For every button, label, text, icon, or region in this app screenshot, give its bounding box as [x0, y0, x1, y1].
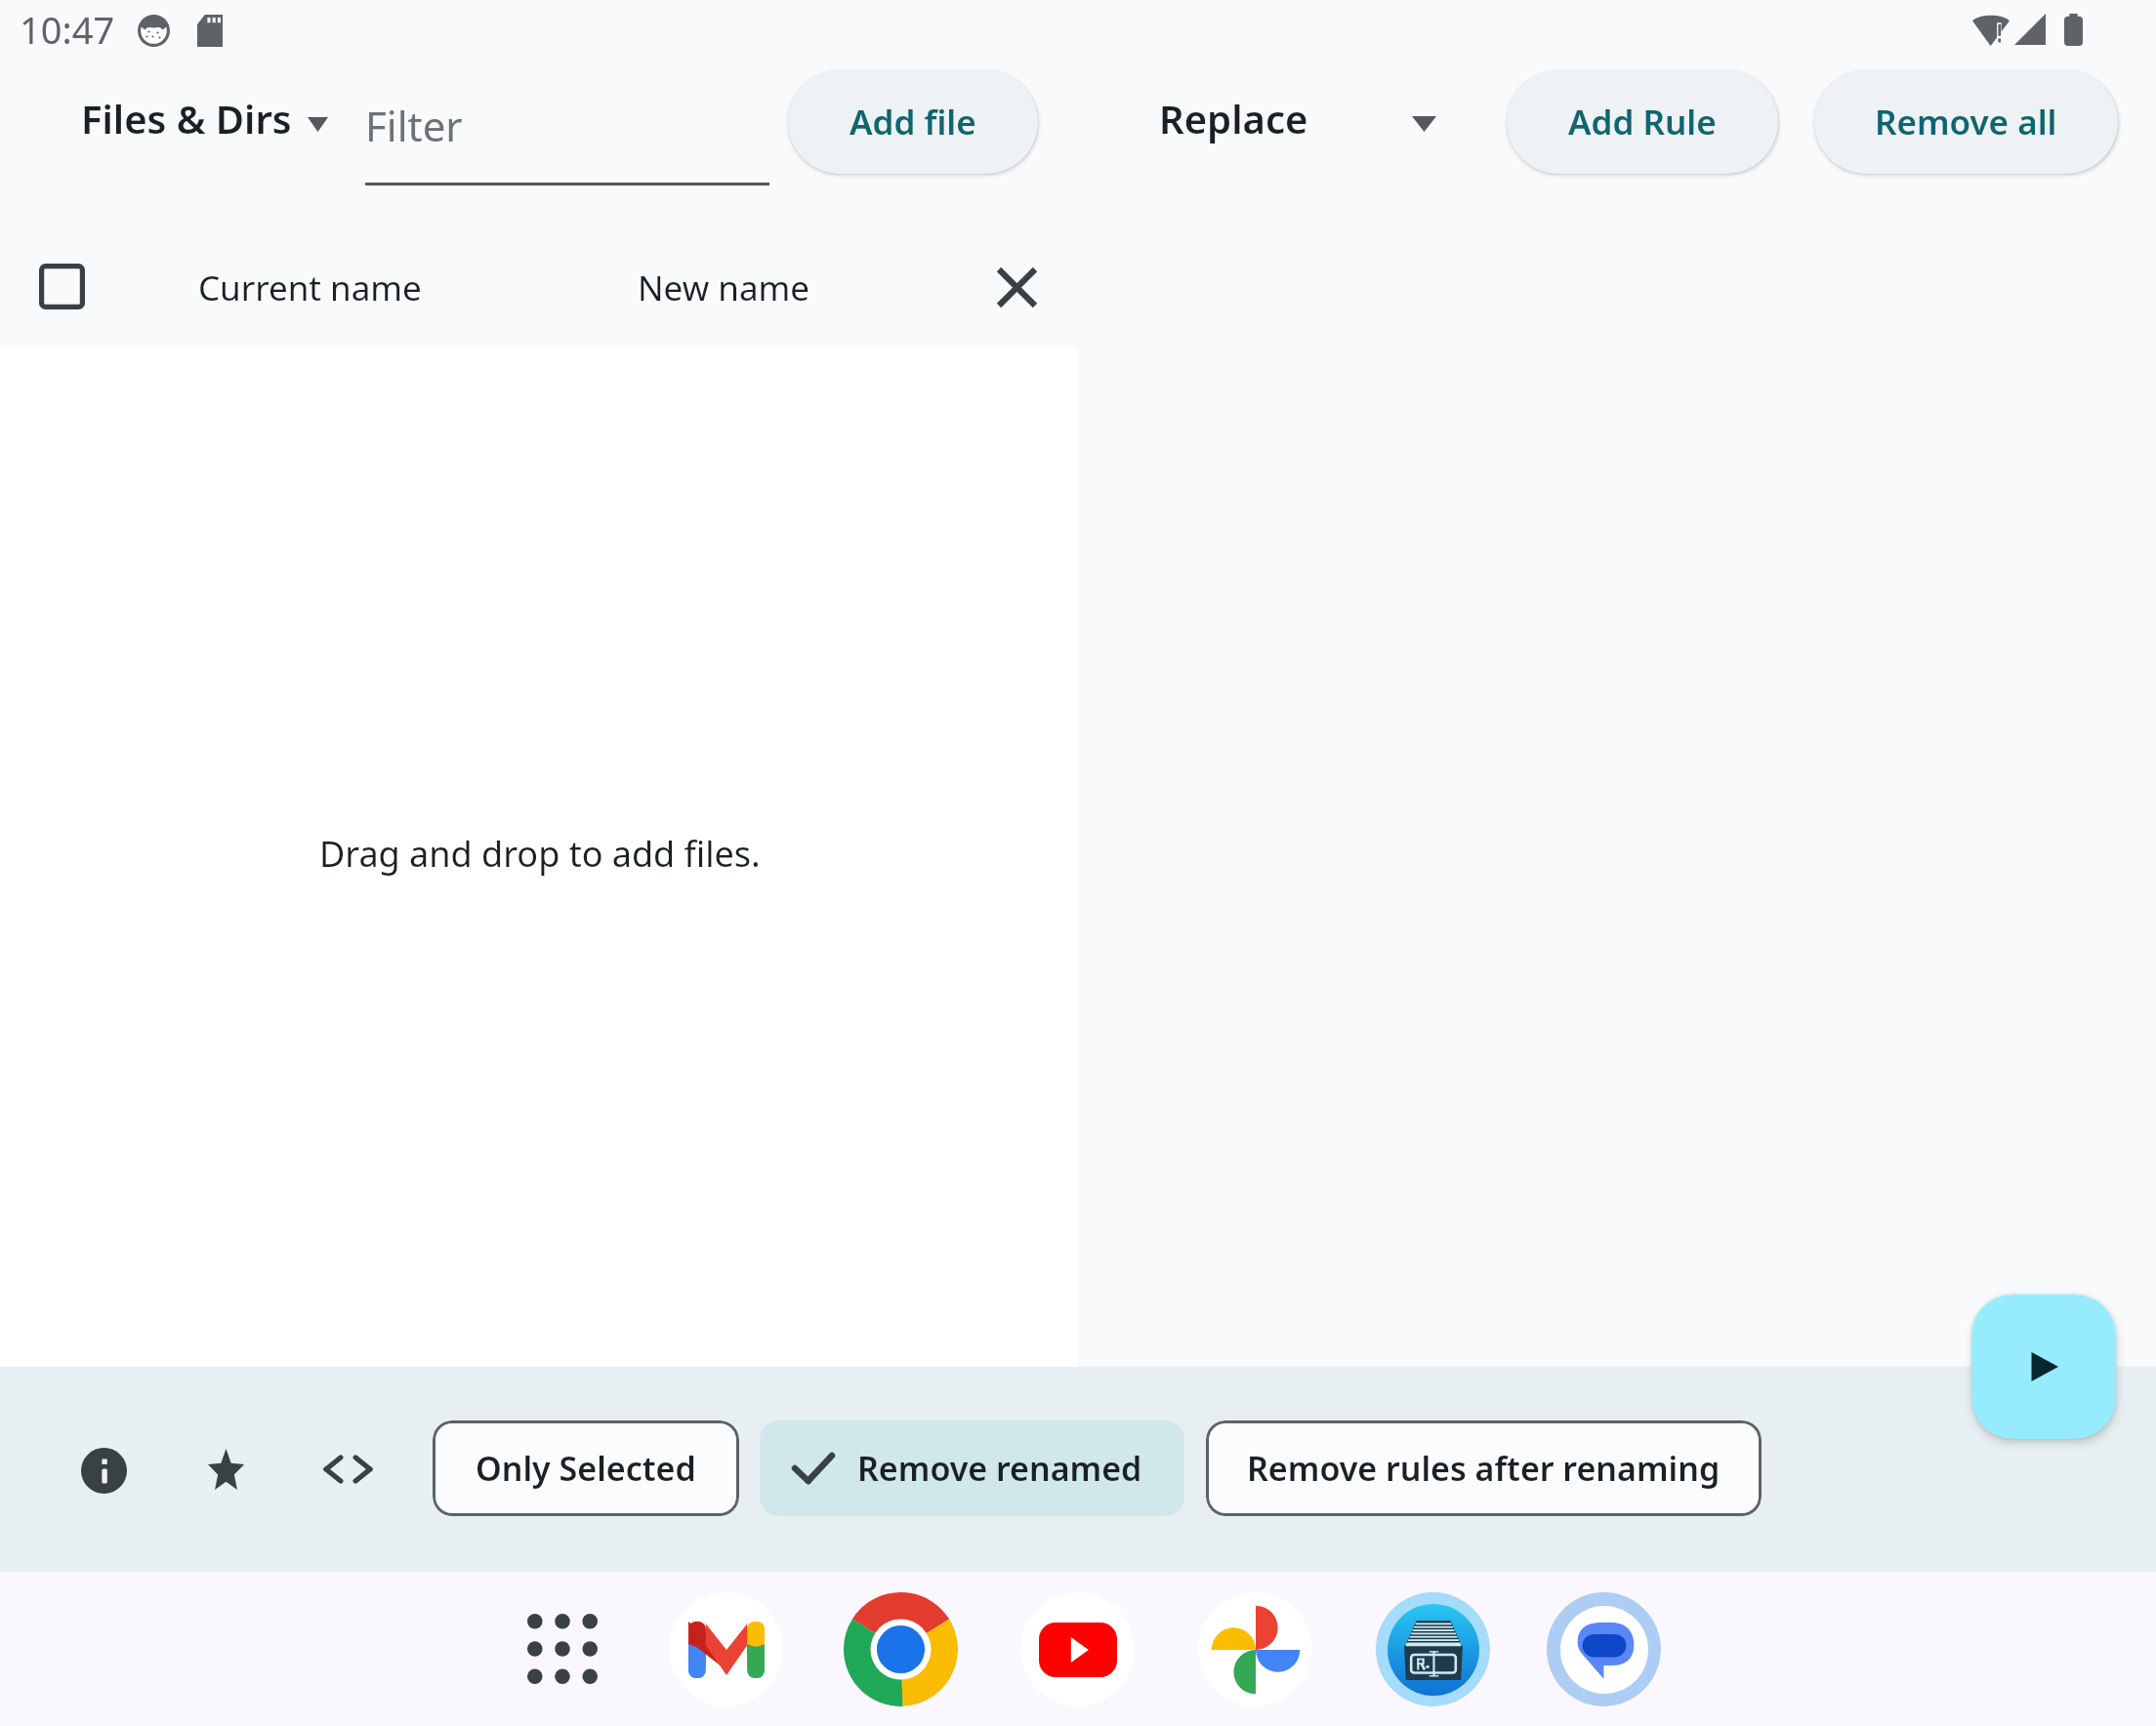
staticText: Remove all	[1875, 99, 2057, 145]
button[interactable]: Photos	[1197, 1591, 1312, 1706]
button[interactable]: Info	[68, 1435, 139, 1505]
button[interactable]: Gmail	[668, 1591, 783, 1706]
button[interactable]: YouTube	[1019, 1591, 1135, 1706]
button[interactable]: Select all	[18, 242, 105, 330]
button[interactable]: Only Selected	[433, 1420, 739, 1516]
staticText: New name	[638, 265, 809, 311]
button[interactable]: Add Rule	[1507, 70, 1778, 174]
button[interactable]: Regular expression	[312, 1434, 383, 1504]
button[interactable]: Messages	[1546, 1591, 1661, 1706]
button[interactable]: Add file	[788, 70, 1038, 174]
staticText: Filter	[365, 98, 463, 153]
button[interactable]: All apps	[516, 1602, 609, 1696]
button[interactable]: Renamer	[1375, 1591, 1490, 1706]
button[interactable]: Filter	[365, 74, 769, 187]
staticText: Drag and drop to add files.	[319, 830, 761, 878]
button[interactable]: Chrome	[843, 1591, 958, 1706]
button[interactable]: Remove all	[1814, 70, 2118, 174]
staticText: Add file	[850, 99, 976, 145]
staticText: Remove rules after renaming	[1247, 1446, 1721, 1491]
button[interactable]: Remove renamed	[760, 1420, 1184, 1516]
staticText: Only Selected	[476, 1446, 696, 1491]
staticText: Add Rule	[1568, 99, 1717, 145]
button[interactable]: Files & Dirs	[56, 76, 353, 160]
button[interactable]: Start renaming	[1971, 1294, 2116, 1439]
button[interactable]: Clear all	[973, 243, 1060, 331]
staticText: Replace	[1159, 92, 1308, 144]
button[interactable]: Favorites	[190, 1434, 261, 1504]
staticText: Current name	[198, 265, 422, 311]
staticText: Remove renamed	[857, 1446, 1142, 1491]
button[interactable]: Remove rules after renaming	[1206, 1420, 1762, 1516]
staticText: 10:47	[20, 4, 115, 55]
button[interactable]: Replace	[1134, 76, 1462, 160]
staticText: Files & Dirs	[81, 92, 292, 144]
